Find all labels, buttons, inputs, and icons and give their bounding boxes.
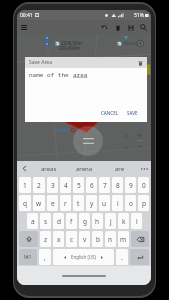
button[interactable]: g	[79, 213, 90, 229]
button[interactable]: 9	[125, 177, 136, 193]
button[interactable]: a	[27, 213, 38, 229]
button[interactable]: English (US)	[53, 249, 114, 265]
button[interactable]: More options	[137, 161, 151, 176]
staticText: 8	[116, 181, 120, 190]
button[interactable]: are	[102, 161, 137, 176]
button[interactable]: !#1	[19, 249, 37, 265]
button[interactable]: o	[125, 195, 136, 211]
staticText: o	[129, 199, 133, 208]
button[interactable]: b	[92, 231, 103, 247]
staticText: c	[70, 235, 74, 244]
staticText: 00:41	[20, 12, 33, 19]
staticText: .	[121, 253, 123, 262]
button[interactable]: Zoom out	[134, 141, 144, 151]
button[interactable]: c	[66, 231, 77, 247]
button[interactable]: y	[86, 195, 97, 211]
staticText: v	[83, 235, 87, 244]
button[interactable]: r	[60, 195, 71, 211]
button[interactable]: 3	[47, 177, 58, 193]
staticText: y	[90, 199, 94, 208]
staticText: p	[142, 199, 146, 208]
button[interactable]: v	[79, 231, 90, 247]
staticText: 4	[64, 181, 68, 190]
button[interactable]: p	[138, 195, 149, 211]
staticText: t	[77, 199, 80, 208]
staticText: Museo 1	[123, 40, 142, 46]
button[interactable]: 1	[19, 177, 31, 193]
staticText: 0	[142, 181, 146, 190]
staticText: k	[122, 217, 126, 226]
staticText: g	[83, 217, 87, 226]
button[interactable]: 0	[138, 177, 149, 193]
button[interactable]: Tilt down	[122, 143, 131, 152]
button[interactable]: i	[112, 195, 123, 211]
button[interactable]: arena	[67, 161, 102, 176]
staticText: m	[120, 235, 127, 244]
staticText: 206.404m	[59, 45, 80, 51]
button[interactable]: Previous suggestions	[17, 161, 31, 176]
button[interactable]: Search	[137, 21, 150, 34]
staticText: j	[110, 217, 112, 226]
button[interactable]: Menu	[17, 20, 31, 34]
button[interactable]: .	[116, 249, 128, 265]
button[interactable]: 4	[60, 177, 71, 193]
button[interactable]: e	[47, 195, 58, 211]
staticText: x	[57, 235, 61, 244]
staticText: s	[44, 217, 48, 226]
button[interactable]: Zoom in	[134, 130, 144, 140]
staticText: u	[102, 199, 107, 208]
staticText: n	[108, 235, 113, 244]
staticText: arena	[76, 165, 93, 173]
button[interactable]: f	[66, 213, 77, 229]
button[interactable]: 2	[33, 177, 45, 193]
button[interactable]: x	[53, 231, 64, 247]
button[interactable]: Shift	[19, 231, 38, 247]
button[interactable]: q	[19, 195, 31, 211]
button[interactable]: l	[131, 213, 142, 229]
staticText: d	[57, 217, 61, 226]
staticText: SAVE	[127, 110, 138, 116]
button[interactable]: Undo	[98, 21, 111, 34]
staticText: English (US)	[71, 254, 96, 260]
staticText: r	[64, 199, 67, 208]
staticText: w	[36, 199, 42, 208]
button[interactable]: j	[105, 213, 116, 229]
button[interactable]: Delete	[111, 21, 124, 34]
button[interactable]: d	[53, 213, 64, 229]
staticText: i	[117, 199, 119, 208]
button[interactable]: h	[92, 213, 103, 229]
button[interactable]: Enter	[130, 249, 149, 265]
staticText: l	[136, 217, 138, 226]
staticText: Save Area	[29, 59, 52, 66]
button[interactable]: Tilt up	[122, 132, 131, 141]
button[interactable]: 6	[86, 177, 97, 193]
button[interactable]: Map control	[73, 126, 103, 156]
staticText: h	[95, 217, 100, 226]
staticText: 5	[77, 181, 81, 190]
button[interactable]: s	[40, 213, 51, 229]
button[interactable]: Backspace	[131, 231, 149, 247]
button[interactable]: 7	[99, 177, 110, 193]
button[interactable]: n	[105, 231, 116, 247]
staticText: are	[115, 165, 125, 173]
button[interactable]: Delete	[135, 58, 145, 68]
button[interactable]: w	[33, 195, 45, 211]
button[interactable]: ,	[39, 249, 51, 265]
staticText: b	[96, 235, 100, 244]
staticText: 9	[129, 181, 133, 190]
button[interactable]: areas	[31, 161, 67, 176]
button[interactable]: k	[118, 213, 129, 229]
staticText: a	[31, 217, 35, 226]
button[interactable]: CANCEL	[98, 108, 122, 118]
button[interactable]: m	[118, 231, 129, 247]
button[interactable]: 5	[73, 177, 84, 193]
button[interactable]: 8	[112, 177, 123, 193]
button[interactable]: SAVE	[124, 108, 141, 118]
staticText: ⤵	[55, 41, 60, 46]
staticText: ,	[44, 253, 46, 262]
button[interactable]: Save	[124, 21, 137, 34]
button[interactable]: u	[99, 195, 110, 211]
button[interactable]: z	[40, 231, 51, 247]
button[interactable]: t	[73, 195, 84, 211]
staticText: 3	[51, 181, 55, 190]
